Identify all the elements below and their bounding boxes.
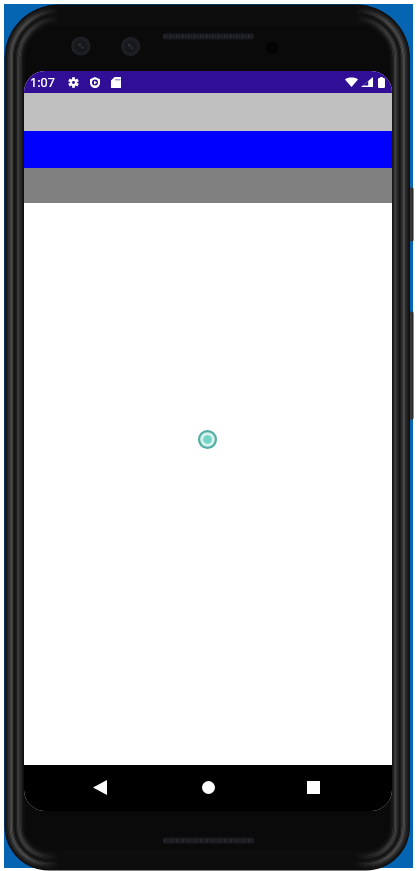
staticText: 1:07 [30, 74, 55, 91]
button[interactable]: Home [178, 772, 238, 803]
button[interactable]: Target [198, 430, 217, 449]
button[interactable]: Recent apps [283, 772, 343, 803]
button[interactable]: Back [70, 772, 130, 803]
